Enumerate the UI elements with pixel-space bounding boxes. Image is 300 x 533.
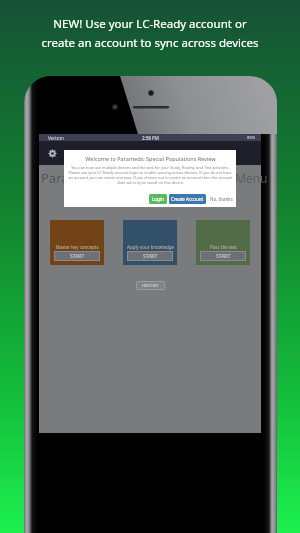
staticText: data will only be saved on this device. bbox=[117, 180, 184, 185]
staticText: Pass the test bbox=[210, 244, 237, 250]
staticText: No, thanks bbox=[210, 196, 233, 202]
staticText: Menu bbox=[235, 170, 268, 186]
staticText: START bbox=[70, 253, 85, 260]
staticText: Login bbox=[152, 196, 164, 202]
staticText: Welcome to Paramedic Special Populations… bbox=[85, 155, 216, 162]
staticText: Create Account bbox=[171, 196, 204, 202]
button[interactable]: Apply your knowledge bbox=[123, 220, 177, 265]
button[interactable]: Settings bbox=[48, 149, 57, 158]
button[interactable]: Login bbox=[149, 194, 167, 204]
button[interactable]: START bbox=[54, 251, 100, 261]
staticText: 85% bbox=[247, 135, 256, 141]
button[interactable]: Pass the test bbox=[196, 220, 250, 265]
staticText: Verizon bbox=[48, 135, 64, 141]
staticText: Apply your knowledge bbox=[127, 244, 174, 250]
staticText: create an account to sync across devices bbox=[41, 35, 259, 51]
button[interactable]: Create Account bbox=[169, 194, 206, 204]
staticText: START bbox=[143, 253, 158, 260]
staticText: an account you can create one now. If yo… bbox=[68, 175, 233, 180]
button[interactable]: HISTORY bbox=[136, 281, 165, 290]
button[interactable]: START bbox=[200, 251, 246, 261]
staticText: 2:58 PM bbox=[142, 135, 159, 141]
staticText: Master key concepts bbox=[55, 244, 99, 250]
staticText: You can now use multiple devices and the… bbox=[71, 165, 229, 170]
staticText: Paramedic bbox=[41, 169, 106, 187]
button[interactable]: Master key concepts bbox=[50, 220, 104, 265]
staticText: Please use your LC Ready account login t… bbox=[68, 170, 232, 175]
button[interactable]: START bbox=[127, 251, 173, 261]
staticText: NEW! Use your LC-Ready account or bbox=[53, 16, 247, 32]
staticText: START bbox=[216, 253, 231, 260]
staticText: HISTORY bbox=[142, 283, 159, 288]
